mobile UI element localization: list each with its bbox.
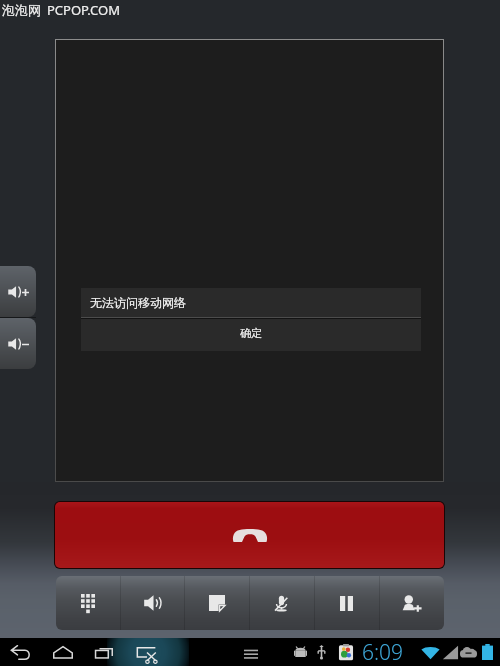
button[interactable]: Screenshot [127,638,167,666]
staticText: 无法访问移动网络 [90,295,186,310]
button[interactable]: Menu [231,638,271,666]
staticText: PCPOP.COM [47,1,121,19]
button[interactable]: Volume up [0,266,36,317]
button[interactable]: Mute [249,576,314,630]
button[interactable]: Dialpad [56,576,120,630]
button[interactable]: Hold [314,576,379,630]
button[interactable]: Back [1,638,41,666]
button[interactable]: 确定 [81,319,421,351]
button[interactable]: Volume down [0,318,36,369]
staticText: 6:09 [362,638,404,666]
button[interactable]: Notes [184,576,249,630]
button[interactable]: Add call [379,576,444,630]
button[interactable]: Home [43,638,83,666]
staticText: 确定 [240,326,262,340]
staticText: 泡泡网 [2,2,41,18]
button[interactable]: End call [55,502,444,568]
button[interactable]: Speaker [120,576,184,630]
button[interactable]: Recents [85,638,125,666]
